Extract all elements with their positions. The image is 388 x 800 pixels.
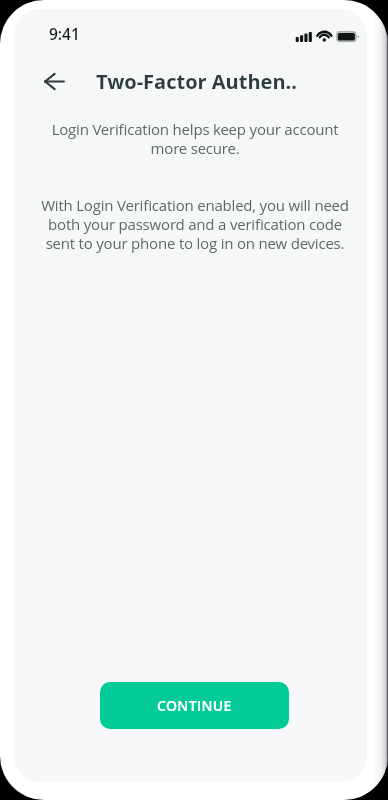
staticText: Two-Factor Authen.. xyxy=(96,68,297,95)
button[interactable]: Back xyxy=(35,62,73,100)
staticText: CONTINUE xyxy=(157,696,232,715)
staticText: 9:41 xyxy=(49,23,80,44)
staticText: Login Verification helps keep your accou… xyxy=(44,119,346,159)
button[interactable]: CONTINUE xyxy=(100,682,289,729)
staticText: With Login Verification enabled, you wil… xyxy=(36,195,354,254)
